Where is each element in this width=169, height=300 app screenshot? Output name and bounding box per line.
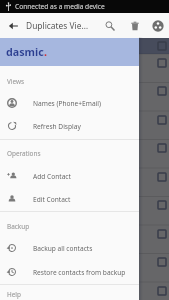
staticText: Operations (7, 149, 41, 158)
staticText: Duplicates Vie… (26, 20, 89, 31)
staticText: . (44, 45, 48, 60)
staticText: Backup all contacts (33, 244, 93, 253)
staticText: Restore contacts from backup (33, 268, 126, 277)
staticText: Backup (7, 222, 30, 231)
button[interactable]: Backup all contacts (0, 237, 139, 259)
staticText: Refresh Display (33, 122, 81, 131)
button[interactable]: Group duplicates (147, 15, 169, 37)
staticText: Add Contact (33, 172, 71, 181)
button[interactable]: Refresh Display (0, 115, 139, 137)
button[interactable]: Add Contact (0, 165, 139, 187)
button[interactable]: Delete (124, 15, 146, 37)
button[interactable]: Names (Phone+Email) (0, 92, 139, 114)
staticText: dasmic (6, 45, 44, 60)
staticText: Help (7, 290, 21, 299)
button[interactable]: Navigate up (1, 13, 26, 38)
button[interactable] (0, 38, 169, 54)
staticText: Views (7, 77, 25, 86)
button[interactable]: Search (99, 15, 121, 37)
staticText: Names (Phone+Email) (33, 99, 101, 108)
button[interactable]: Edit Contact (0, 188, 139, 210)
staticText: Connected as a media device (15, 2, 105, 11)
staticText: Edit Contact (33, 195, 71, 204)
button[interactable]: Restore contacts from backup (0, 261, 139, 283)
